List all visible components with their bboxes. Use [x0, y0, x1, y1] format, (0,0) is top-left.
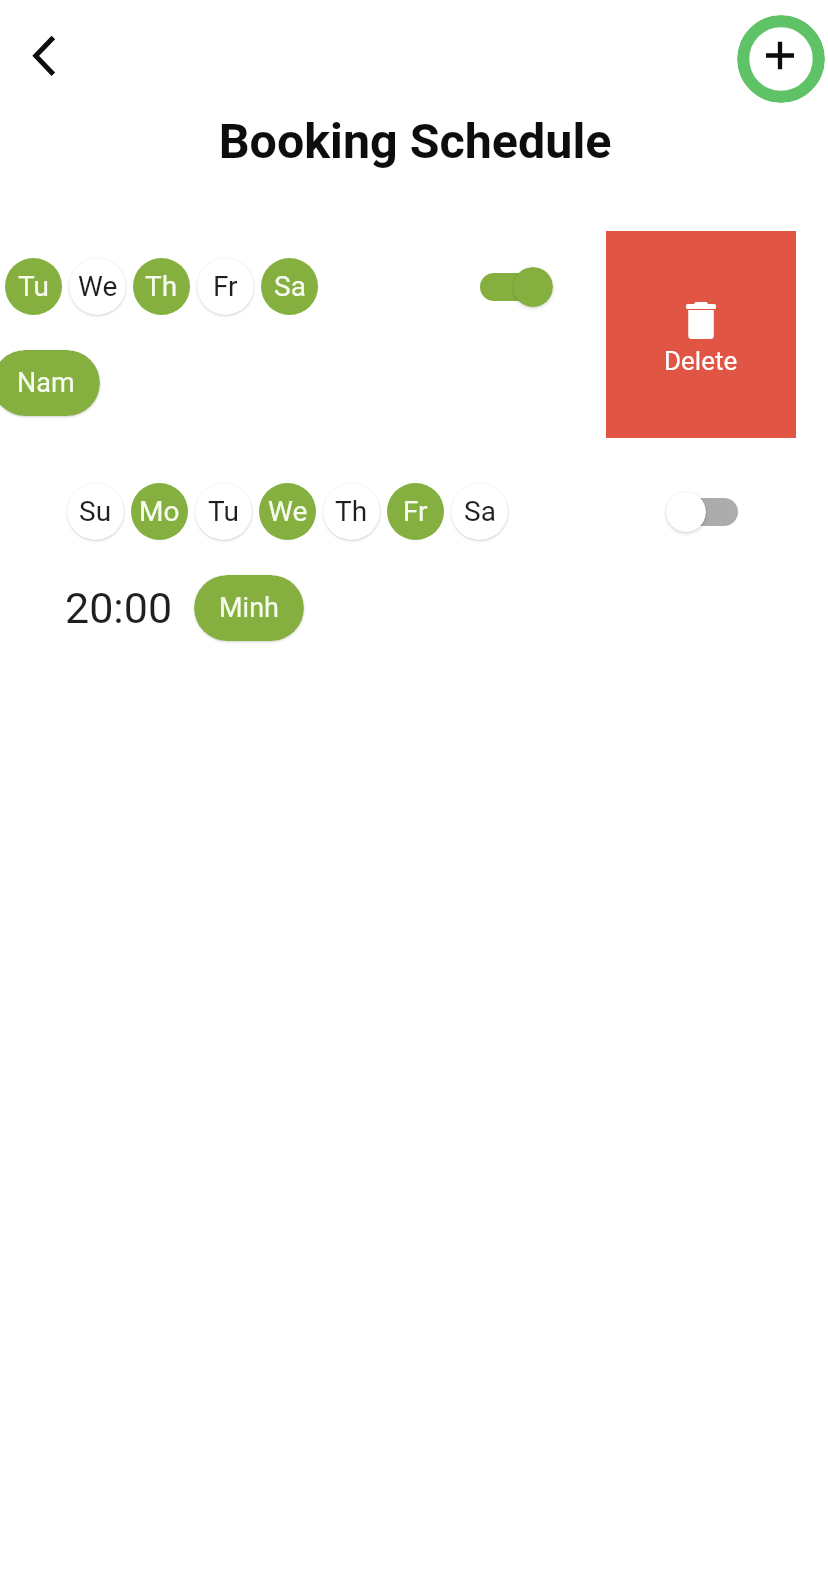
button[interactable]: Add schedule — [737, 15, 825, 103]
button[interactable]: We — [69, 258, 126, 315]
button[interactable]: Tu — [195, 483, 252, 540]
button[interactable]: Minh — [194, 575, 304, 641]
button[interactable]: Mo — [131, 483, 188, 540]
staticText: Delete — [664, 346, 738, 376]
staticText: Th — [335, 495, 368, 528]
button[interactable]: Fr — [387, 483, 444, 540]
button[interactable]: Sa — [261, 258, 318, 315]
button[interactable]: Fr — [197, 258, 254, 315]
staticText: Sa — [274, 270, 306, 303]
staticText: Tu — [18, 270, 49, 303]
staticText: Tu — [208, 495, 239, 528]
button[interactable]: Delete schedule — [604, 456, 796, 663]
button[interactable]: We — [259, 483, 316, 540]
button[interactable]: Schedule off — [666, 492, 742, 532]
staticText: Mo — [139, 495, 180, 528]
button[interactable]: Su — [0, 231, 606, 438]
button[interactable]: Th — [133, 258, 190, 315]
staticText: Sa — [464, 495, 496, 528]
button[interactable]: Back — [10, 22, 78, 90]
staticText: Fr — [403, 495, 428, 528]
staticText: Booking Schedule — [1, 113, 828, 170]
button[interactable]: Tu — [5, 258, 62, 315]
button[interactable]: Su — [0, 456, 796, 663]
staticText: Fr — [213, 270, 238, 303]
staticText: Minh — [219, 592, 279, 624]
staticText: We — [78, 270, 118, 303]
button[interactable]: Delete schedule — [604, 231, 796, 438]
button[interactable]: Sa — [451, 483, 508, 540]
staticText: Nam — [17, 367, 75, 399]
button[interactable]: Th — [323, 483, 380, 540]
button[interactable]: Schedule on — [476, 267, 552, 307]
button[interactable]: Nam — [0, 350, 100, 416]
staticText: Th — [145, 270, 178, 303]
staticText: 20:00 — [65, 583, 173, 633]
staticText: Su — [79, 495, 112, 528]
staticText: We — [268, 495, 308, 528]
button[interactable]: Su — [67, 483, 124, 540]
